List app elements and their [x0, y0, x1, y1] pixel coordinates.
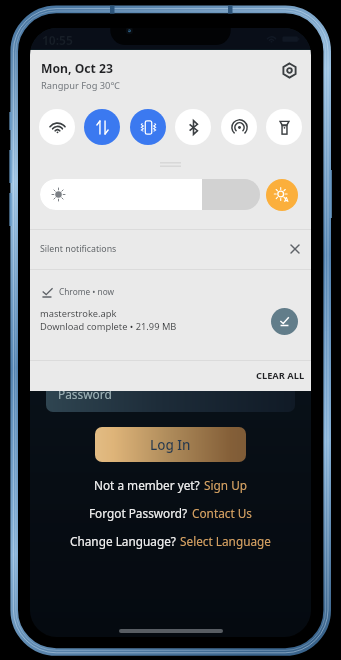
staticText: Contact Us [192, 505, 253, 521]
staticText: Rangpur Fog 30℃ [41, 79, 120, 92]
staticText: Mon, Oct 23 [41, 60, 114, 77]
staticText: masterstroke.apk [40, 307, 117, 320]
button[interactable]: Log In [95, 427, 246, 462]
staticText: Silent notifications [40, 243, 117, 255]
button[interactable]: Brightness [40, 179, 260, 210]
button[interactable]: CLEAR ALL [252, 364, 309, 387]
button[interactable]: Bluetooth [175, 109, 211, 145]
button[interactable]: Contact Us [192, 505, 253, 521]
staticText: Not a member yet? [94, 477, 200, 493]
button[interactable]: Mobile data [84, 109, 120, 145]
button[interactable]: Flashlight [266, 109, 302, 145]
staticText: 10:55 [42, 32, 73, 48]
button[interactable]: Select Language [180, 533, 271, 549]
staticText: Select Language [180, 533, 271, 549]
staticText: Sign Up [204, 477, 248, 493]
staticText: Change Language? [70, 533, 176, 549]
button[interactable]: Auto brightness [266, 179, 298, 211]
button[interactable]: Open download [271, 308, 298, 335]
button[interactable]: Vibrate [130, 109, 166, 145]
button[interactable]: Dismiss silent notifications [286, 240, 304, 258]
staticText: Password [58, 386, 112, 402]
staticText: Forgot Password? [89, 505, 188, 521]
button[interactable]: Sign Up [204, 477, 248, 493]
staticText: Chrome • now [59, 286, 115, 297]
staticText: Download complete • 21.99 MB [40, 320, 177, 333]
button[interactable]: Settings [277, 58, 301, 82]
button[interactable]: Wi-Fi [39, 109, 75, 145]
button[interactable]: Chrome • now [30, 270, 311, 359]
staticText: CLEAR ALL [256, 369, 305, 382]
staticText: Log In [150, 436, 191, 454]
button[interactable]: Hotspot [221, 109, 257, 145]
